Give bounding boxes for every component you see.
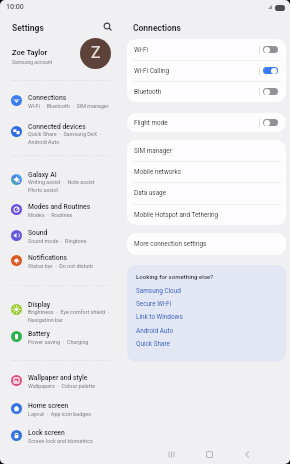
button[interactable]: Mobile Hotspot and Tethering	[127, 204, 286, 225]
staticText: Zoe Taylor	[12, 48, 48, 57]
button[interactable]: Battery	[0, 325, 124, 348]
staticText: Notifications	[28, 254, 67, 262]
staticText: Connections	[133, 23, 181, 33]
staticText: Brightness · Eye comfort shield ·	[28, 309, 110, 315]
button[interactable]: Lock screen	[0, 424, 124, 447]
staticText: SIM manager	[134, 147, 172, 155]
button[interactable]: Back	[239, 446, 255, 462]
button[interactable]: More connection settings	[127, 233, 286, 255]
staticText: Connected devices	[28, 123, 86, 131]
button[interactable]: Flight mode	[127, 113, 286, 132]
staticText: Writing assist · Note assist ·	[28, 179, 99, 185]
button[interactable]: SIM manager	[127, 140, 286, 161]
button[interactable]: Wallpaper and style	[0, 369, 124, 392]
staticText: Power saving · Charging	[28, 339, 89, 345]
staticText: Mobile networks	[134, 168, 182, 176]
staticText: Quick Share · Samsung DeX ·	[28, 131, 102, 137]
button[interactable]: Search	[100, 19, 114, 33]
staticText: Android Auto	[28, 139, 60, 145]
staticText: Connections	[28, 94, 67, 102]
button[interactable]: Samsung Cloud	[133, 285, 215, 296]
button[interactable]: Quick Share	[133, 338, 215, 349]
staticText: Settings	[12, 23, 44, 33]
button[interactable]: Home	[201, 446, 217, 462]
button[interactable]: Data usage	[127, 182, 286, 203]
staticText: Sound mode · Ringtone	[28, 238, 87, 244]
button[interactable]: Bluetooth	[127, 81, 286, 102]
staticText: Mobile Hotspot and Tethering	[134, 211, 219, 219]
staticText: Looking for something else?	[136, 273, 214, 280]
staticText: Wallpaper and style	[28, 374, 88, 382]
staticText: Navigation bar	[28, 317, 63, 323]
staticText: Wi-Fi · Bluetooth · SIM manager	[28, 103, 109, 109]
button[interactable]: Galaxy AI	[0, 166, 124, 193]
button[interactable]: Display	[0, 296, 124, 323]
staticText: Quick Share	[136, 340, 170, 348]
staticText: Screen lock and biometrics	[28, 438, 93, 444]
staticText: Samsung account	[12, 59, 53, 65]
staticText: Bluetooth	[134, 88, 162, 96]
button[interactable]: Wi-Fi Calling	[127, 60, 286, 81]
staticText: Display	[28, 301, 51, 309]
staticText: Home screen	[28, 402, 69, 410]
button[interactable]: Secure Wi-Fi	[133, 298, 215, 309]
staticText: 10:00	[6, 3, 24, 11]
button[interactable]: Android Auto	[133, 325, 215, 336]
button[interactable]: Connected devices	[0, 118, 124, 145]
staticText: Lock screen	[28, 429, 65, 437]
button[interactable]: Zoe Taylor	[0, 38, 124, 72]
button[interactable]: Modes and Routines	[0, 198, 124, 221]
staticText: Wi-Fi Calling	[134, 67, 170, 75]
button[interactable]: Wi-Fi	[127, 39, 286, 60]
staticText: Sound	[28, 229, 48, 237]
staticText: Z	[91, 43, 101, 62]
staticText: Flight mode	[134, 119, 168, 127]
staticText: Wallpapers · Colour palette	[28, 383, 96, 389]
staticText: Battery	[28, 330, 50, 338]
staticText: Samsung Cloud	[136, 287, 181, 295]
button[interactable]: Mobile networks	[127, 161, 286, 182]
staticText: Secure Wi-Fi	[136, 300, 172, 308]
staticText: Layout · App icon badges	[28, 411, 91, 417]
button[interactable]: Notifications	[0, 249, 124, 272]
staticText: Modes and Routines	[28, 203, 91, 211]
button[interactable]: Link to Windows	[133, 311, 215, 322]
staticText: Galaxy AI	[28, 171, 57, 179]
staticText: Status bar · Do not disturb	[28, 263, 94, 269]
button[interactable]: Recents	[163, 446, 179, 462]
staticText: Link to Windows	[136, 313, 183, 321]
button[interactable]: Sound	[0, 224, 124, 247]
staticText: Data usage	[134, 189, 167, 197]
staticText: Modes · Routines	[28, 212, 73, 218]
staticText: Photo assist	[28, 187, 58, 193]
staticText: More connection settings	[134, 240, 207, 248]
button[interactable]: Home screen	[0, 397, 124, 420]
button[interactable]: Connections	[0, 89, 124, 112]
staticText: Android Auto	[136, 327, 174, 335]
staticText: Wi-Fi	[134, 46, 149, 54]
